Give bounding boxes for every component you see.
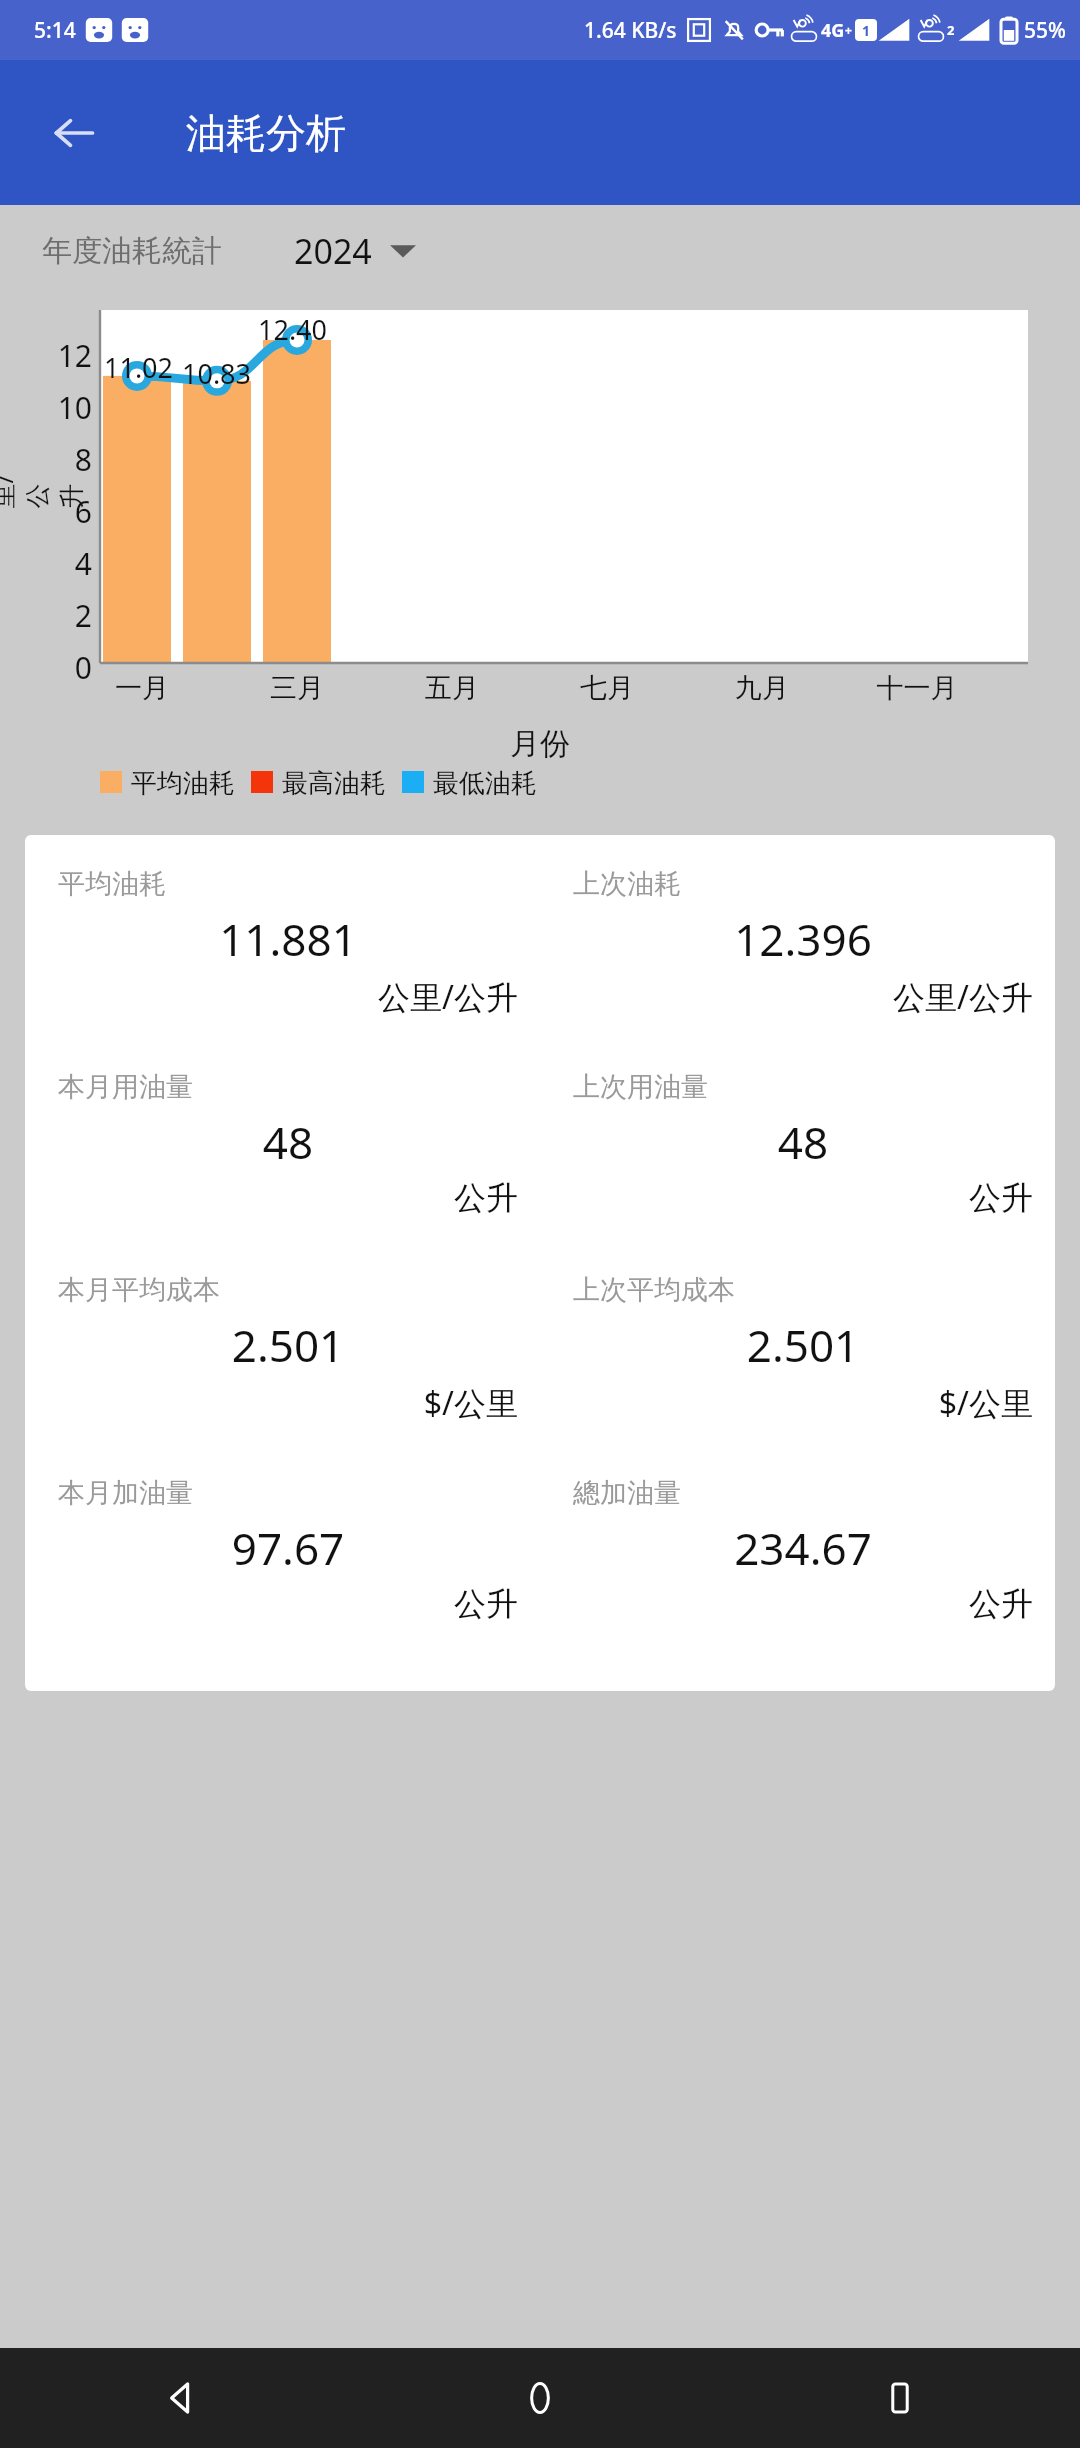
staticText: 三月 [241,671,353,705]
staticText: 1 [862,21,871,40]
staticText: 97.67 [58,1518,518,1578]
staticText: 總加油量 [573,1476,681,1510]
staticText: 公升 [573,1178,1033,1218]
staticText: + [845,22,852,38]
staticText: 公升 [573,1584,1033,1624]
button[interactable]: 2024 [292,222,418,280]
staticText: 11.881 [58,909,518,969]
staticText: 七月 [551,671,663,705]
staticText: 上次油耗 [573,867,681,901]
staticText: $/公里 [58,1381,518,1425]
staticText: 11.02 [104,349,174,386]
staticText: 年度油耗統計 [42,232,222,270]
staticText: 10.83 [182,355,252,392]
button[interactable]: 上次用油量 [540,1056,1055,1259]
staticText: 234.67 [573,1518,1033,1578]
staticText: 12.396 [573,909,1033,969]
staticText: 2 [947,21,955,39]
staticText: 上次平均成本 [573,1273,735,1307]
button[interactable]: Back [26,85,122,181]
staticText: 油耗分析 [186,108,346,158]
staticText: 2.501 [58,1315,518,1375]
staticText: 本月用油量 [58,1070,193,1104]
staticText: 平均油耗 [131,767,235,797]
staticText: 12.40 [258,311,328,348]
button[interactable]: Recent apps [720,2348,1080,2448]
staticText: 本月平均成本 [58,1273,220,1307]
button[interactable]: 本月用油量 [25,1056,540,1259]
staticText: 4G [821,18,845,43]
staticText: 6 [0,491,92,532]
staticText: 2024 [294,228,372,274]
staticText: 48 [58,1112,518,1172]
staticText: 10 [0,387,92,428]
button[interactable]: 平均油耗 [25,853,540,1056]
staticText: 本月加油量 [58,1476,193,1510]
staticText: 0 [0,647,92,688]
staticText: 月份 [510,725,570,763]
button[interactable]: Back [0,2348,360,2448]
staticText: $/公里 [573,1381,1033,1425]
button[interactable]: 本月平均成本 [25,1259,540,1462]
staticText: 公升 [58,1584,518,1624]
staticText: 一月 [86,671,198,705]
staticText: 上次用油量 [573,1070,708,1104]
button[interactable]: 上次平均成本 [540,1259,1055,1462]
staticText: 48 [573,1112,1033,1172]
staticText: 最高油耗 [282,767,386,797]
staticText: 九月 [706,671,818,705]
staticText: 8 [0,439,92,480]
staticText: 公升 [58,1178,518,1218]
staticText: 最低油耗 [433,767,537,797]
button[interactable]: 本月加油量 [25,1462,540,1665]
staticText: 公里/公升 [573,975,1033,1019]
staticText: 12 [0,335,92,376]
staticText: 4 [0,543,92,584]
staticText: 1.64 KB/s [584,16,677,45]
staticText: 平均油耗 [58,867,166,901]
staticText: 公里/公升 [58,975,518,1019]
staticText: 2 [0,595,92,636]
staticText: 五月 [396,671,508,705]
button[interactable]: 總加油量 [540,1462,1055,1665]
staticText: 55% [1024,16,1066,45]
staticText: 公里/公升 [0,472,87,508]
staticText: 5:14 [34,16,76,45]
staticText: 十一月 [861,671,973,705]
button[interactable]: Home [360,2348,720,2448]
staticText: 2.501 [573,1315,1033,1375]
button[interactable]: 上次油耗 [540,853,1055,1056]
